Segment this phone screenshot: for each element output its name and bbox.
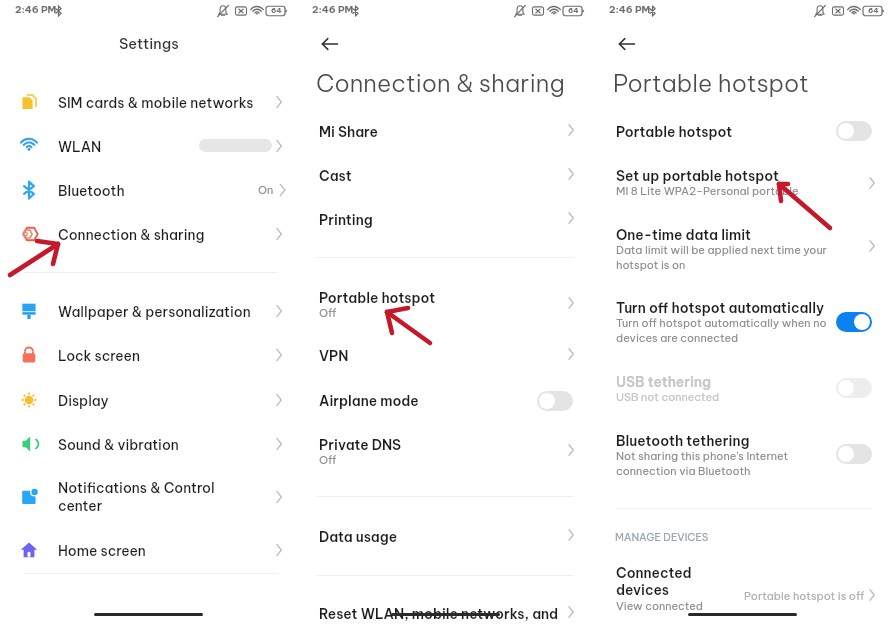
button[interactable]: Back: [606, 26, 642, 62]
button[interactable]: Set up portable hotspot: [594, 167, 894, 212]
button[interactable]: Portable hotspot: [297, 289, 594, 334]
staticText: MANAGE DEVICES: [615, 531, 709, 544]
button[interactable]: Bluetooth: [0, 170, 297, 210]
staticText: Off: [319, 306, 337, 320]
button[interactable]: Reset WLAN, mobile networks, and: [297, 605, 594, 625]
button[interactable]: VPN: [297, 347, 594, 377]
staticText: 2:46 PM: [609, 3, 651, 15]
staticText: Connection & sharing: [58, 226, 258, 243]
staticText: Turn off hotspot automatically: [616, 299, 825, 316]
button[interactable]: Toggle: [836, 378, 872, 398]
staticText: 64: [271, 5, 282, 14]
button[interactable]: Bluetooth tethering: [594, 432, 894, 492]
staticText: USB tethering: [616, 373, 711, 390]
staticText: Mi Share: [319, 123, 378, 140]
button[interactable]: Toggle: [836, 444, 872, 464]
staticText: Data usage: [319, 528, 397, 545]
staticText: 2:46 PM: [15, 3, 57, 15]
staticText: USB not connected: [616, 390, 720, 404]
button[interactable]: Toggle: [836, 121, 872, 141]
button[interactable]: Cast: [297, 167, 594, 197]
staticText: Notifications & Control center: [58, 479, 218, 515]
staticText: Wallpaper & personalization: [58, 303, 258, 320]
button[interactable]: Connection & sharing: [0, 214, 297, 254]
staticText: Bluetooth: [58, 182, 258, 199]
staticText: WLAN: [58, 138, 258, 155]
staticText: 2:46 PM: [312, 3, 354, 15]
staticText: Portable hotspot is off: [744, 589, 865, 603]
staticText: Private DNS: [319, 436, 402, 453]
button[interactable]: SIM cards & mobile networks: [0, 82, 297, 122]
button[interactable]: Notifications & Control center: [0, 475, 297, 519]
staticText: Off: [319, 453, 337, 467]
staticText: Set up portable hotspot: [616, 167, 779, 184]
staticText: Connection & sharing: [316, 68, 565, 98]
button[interactable]: Wallpaper & personalization: [0, 291, 297, 331]
staticText: Printing: [319, 211, 373, 228]
staticText: Sound & vibration: [58, 436, 258, 453]
button[interactable]: Printing: [297, 211, 594, 241]
button[interactable]: Display: [0, 380, 297, 420]
staticText: Home screen: [58, 542, 258, 559]
staticText: Connected devices: [616, 564, 711, 599]
button[interactable]: Toggle: [537, 391, 573, 411]
staticText: One-time data limit: [616, 226, 751, 243]
staticText: Cast: [319, 167, 352, 184]
staticText: Not sharing this phone's Internet connec…: [616, 449, 789, 478]
staticText: On: [258, 183, 274, 197]
button[interactable]: WLAN: [0, 126, 297, 166]
staticText: Portable hotspot: [616, 123, 733, 140]
staticText: Reset WLAN, mobile networks, and: [319, 605, 559, 622]
staticText: SIM cards & mobile networks: [58, 94, 258, 111]
staticText: VPN: [319, 347, 349, 364]
staticText: Settings: [119, 34, 179, 52]
button[interactable]: Back: [309, 26, 345, 62]
staticText: Portable hotspot: [613, 68, 809, 98]
staticText: Bluetooth tethering: [616, 432, 750, 449]
staticText: Airplane mode: [319, 392, 419, 409]
button[interactable]: Data usage: [297, 528, 594, 558]
staticText: Display: [58, 392, 258, 409]
button[interactable]: One-time data limit: [594, 226, 894, 286]
button[interactable]: Home screen: [0, 530, 297, 570]
button[interactable]: Airplane mode: [297, 392, 594, 422]
button[interactable]: Connected devices: [594, 564, 894, 620]
button[interactable]: Portable hotspot: [594, 123, 894, 153]
staticText: Portable hotspot: [319, 289, 436, 306]
button[interactable]: Sound & vibration: [0, 424, 297, 464]
button[interactable]: Lock screen: [0, 335, 297, 375]
button[interactable]: Turn off hotspot automatically: [594, 299, 894, 359]
staticText: Data limit will be applied next time you…: [616, 243, 827, 272]
staticText: MI 8 Lite WPA2-Personal portable: [616, 184, 799, 198]
button[interactable]: Mi Share: [297, 123, 594, 153]
staticText: Lock screen: [58, 347, 258, 364]
button[interactable]: USB tethering: [594, 373, 894, 418]
button[interactable]: Private DNS: [297, 436, 594, 481]
staticText: 64: [868, 5, 879, 14]
staticText: View connected: [616, 599, 704, 613]
staticText: 64: [568, 5, 579, 14]
button[interactable]: Toggle: [836, 312, 872, 332]
staticText: Turn off hotspot automatically when no d…: [616, 316, 827, 345]
